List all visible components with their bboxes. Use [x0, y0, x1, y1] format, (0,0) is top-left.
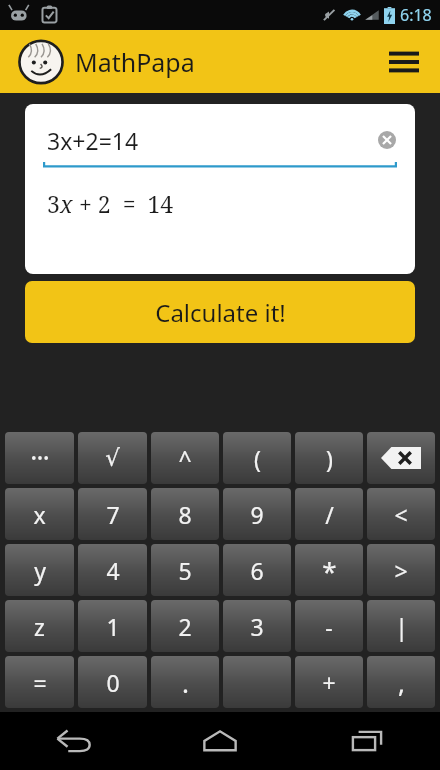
button[interactable]: More	[5, 432, 74, 484]
button[interactable]: Square root	[78, 432, 147, 484]
button[interactable]: Recent apps	[293, 712, 440, 770]
staticText: )	[326, 443, 333, 474]
staticText: 5	[178, 555, 192, 586]
staticText: -	[325, 611, 333, 642]
button[interactable]: /	[295, 488, 363, 540]
staticText: <	[394, 499, 408, 530]
button[interactable]: (	[223, 432, 291, 484]
staticText: 7	[106, 499, 120, 530]
staticText: z	[34, 611, 45, 642]
staticText: x	[60, 188, 73, 219]
button[interactable]: Blank	[223, 656, 291, 708]
staticText: >	[394, 555, 408, 586]
button[interactable]: z	[5, 600, 74, 652]
staticText: ,	[398, 665, 405, 700]
button[interactable]: Clear	[373, 126, 401, 154]
button[interactable]: y	[5, 544, 74, 596]
button[interactable]: 4	[78, 544, 147, 596]
staticText: 6:18	[400, 4, 432, 26]
button[interactable]: )	[295, 432, 363, 484]
button[interactable]: *	[295, 544, 363, 596]
button[interactable]: 9	[223, 488, 291, 540]
button[interactable]: x	[5, 488, 74, 540]
button[interactable]: -	[295, 600, 363, 652]
staticText: +	[322, 667, 336, 698]
button[interactable]: +	[295, 656, 363, 708]
button[interactable]: Home	[146, 712, 293, 770]
staticText: /	[325, 499, 334, 530]
staticText: 3x+2=14	[47, 125, 139, 156]
staticText: 4	[106, 555, 120, 586]
staticText: y	[34, 555, 46, 586]
staticText: x	[33, 499, 46, 530]
staticText: √	[105, 445, 120, 472]
button[interactable]: 8	[151, 488, 219, 540]
staticText: 2	[178, 611, 192, 642]
button[interactable]: <	[367, 488, 435, 540]
staticText: (	[254, 443, 261, 474]
button[interactable]: 5	[151, 544, 219, 596]
button[interactable]: >	[367, 544, 435, 596]
staticText: 1	[106, 611, 120, 642]
button[interactable]: |	[367, 600, 435, 652]
staticText: 0	[106, 667, 120, 698]
staticText: 8	[178, 499, 192, 530]
staticText: + 2 = 14	[73, 188, 174, 219]
staticText: 6	[250, 555, 264, 586]
staticText: |	[395, 611, 408, 642]
staticText: .	[182, 665, 189, 700]
staticText: =	[33, 667, 47, 698]
button[interactable]: Menu	[376, 30, 432, 93]
staticText: 9	[250, 499, 264, 530]
staticText: MathPapa	[75, 45, 195, 79]
button[interactable]: 3	[223, 600, 291, 652]
button[interactable]: Back	[0, 712, 146, 770]
staticText: 3	[47, 188, 60, 219]
button[interactable]: ^	[151, 432, 219, 484]
staticText: ^	[178, 443, 192, 474]
button[interactable]: 6	[223, 544, 291, 596]
button[interactable]: ,	[367, 656, 435, 708]
button[interactable]: =	[5, 656, 74, 708]
staticText: Calculate it!	[155, 296, 286, 329]
button[interactable]: 3x+2=14	[25, 104, 415, 274]
button[interactable]: Calculate it!	[25, 281, 415, 343]
button[interactable]: Backspace	[367, 432, 435, 484]
button[interactable]: 1	[78, 600, 147, 652]
button[interactable]: .	[151, 656, 219, 708]
staticText: *	[322, 553, 337, 588]
staticText: 3	[250, 611, 264, 642]
button[interactable]: 7	[78, 488, 147, 540]
button[interactable]: 0	[78, 656, 147, 708]
button[interactable]: 2	[151, 600, 219, 652]
